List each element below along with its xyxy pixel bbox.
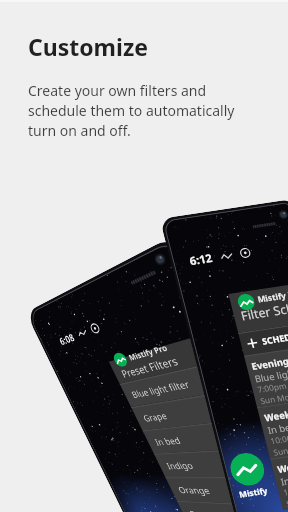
- button[interactable]: Sunset: [67, 213, 165, 234]
- staticText: Filter Schedule: [47, 85, 113, 99]
- button[interactable]: In bed: [67, 129, 165, 150]
- button[interactable]: Blue light filter: [67, 87, 165, 108]
- staticText: In bed: [74, 135, 97, 145]
- staticText: 6:08: [25, 31, 43, 43]
- staticText: Grape: [74, 114, 96, 124]
- button[interactable]: SCHEDULE A FILTER: [41, 106, 113, 126]
- button[interactable]: Evenings: [41, 126, 113, 171]
- button[interactable]: Grape: [67, 108, 165, 129]
- staticText: SCHEDULE A FILTER: [59, 111, 113, 121]
- staticText: Create your own filters and schedule the…: [28, 81, 235, 140]
- staticText: Evenings: [45, 130, 81, 141]
- staticText: Customize: [28, 31, 148, 62]
- staticText: Blue light filter: [74, 93, 126, 103]
- staticText: 6:12: [16, 33, 35, 46]
